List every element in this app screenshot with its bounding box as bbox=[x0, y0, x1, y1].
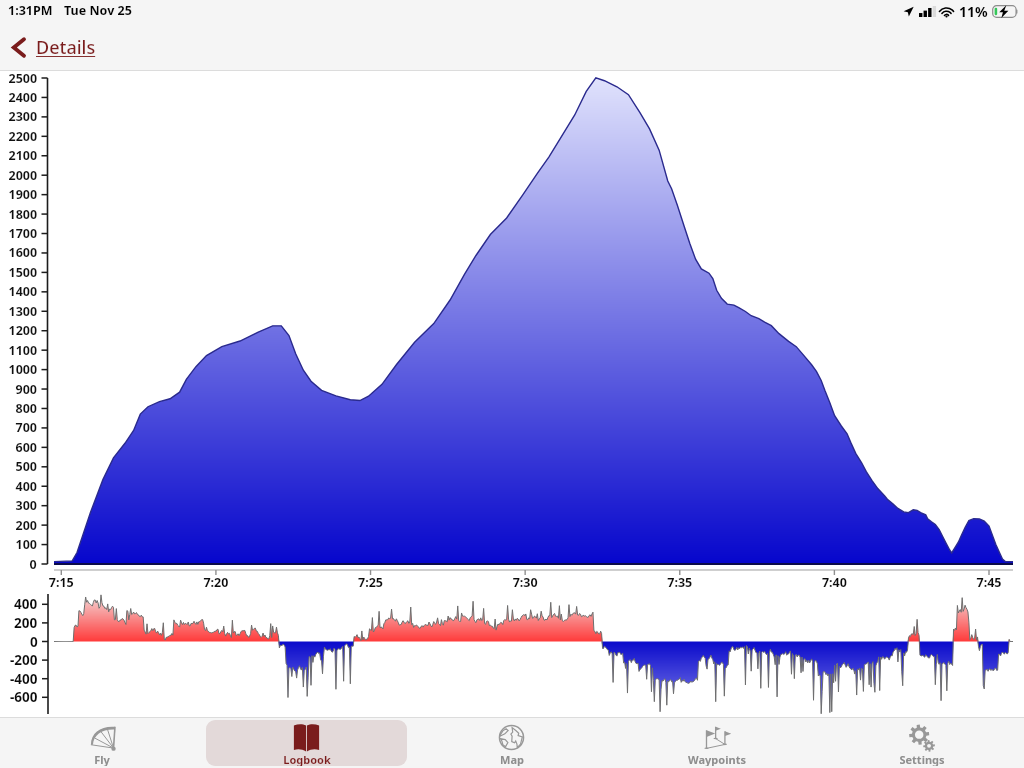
staticText: 11% bbox=[959, 2, 988, 21]
staticText: Map bbox=[500, 752, 524, 766]
button[interactable]: Map bbox=[411, 720, 612, 766]
staticText: Waypoints bbox=[688, 752, 746, 766]
staticText: 1:31PM bbox=[8, 2, 53, 19]
staticText: Details bbox=[36, 35, 96, 60]
button[interactable]: Logbook bbox=[206, 720, 407, 766]
staticText: Settings bbox=[899, 752, 945, 766]
staticText: Tue Nov 25 bbox=[64, 2, 132, 19]
staticText: Fly bbox=[94, 752, 110, 766]
button[interactable]: Waypoints bbox=[616, 720, 817, 766]
button[interactable]: Fly bbox=[2, 720, 202, 766]
staticText: Logbook bbox=[283, 752, 331, 766]
button[interactable]: Settings bbox=[821, 720, 1022, 766]
button[interactable]: Details bbox=[6, 31, 102, 64]
